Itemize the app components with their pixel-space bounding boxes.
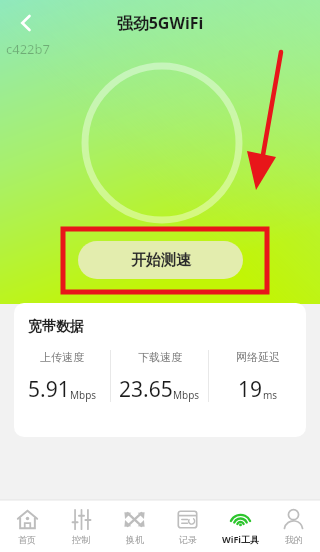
button[interactable]: 换机 (108, 500, 161, 552)
button[interactable]: 开始测速 (78, 241, 243, 279)
button[interactable]: Back (0, 0, 52, 46)
staticText: 宽带数据 (28, 318, 84, 336)
staticText: 我的 (285, 534, 303, 545)
staticText: 5.91 (28, 375, 70, 404)
button[interactable]: 首页 (0, 500, 54, 552)
button[interactable]: 记录 (161, 500, 214, 552)
staticText: 首页 (18, 534, 36, 545)
staticText: ms (263, 388, 278, 402)
staticText: Mbps (173, 388, 200, 402)
staticText: c422b7 (6, 40, 50, 58)
staticText: 控制 (72, 534, 90, 545)
button[interactable]: 我的 (267, 500, 320, 552)
staticText: 19 (238, 375, 263, 404)
staticText: 网络延迟 (236, 350, 280, 364)
staticText: 上传速度 (40, 350, 84, 364)
staticText: 强劲5GWiFi (52, 12, 268, 34)
staticText: 记录 (179, 534, 197, 545)
button[interactable]: 控制 (54, 500, 108, 552)
button[interactable]: WiFi工具 (214, 500, 267, 552)
staticText: 下载速度 (138, 350, 182, 364)
staticText: 开始测速 (131, 251, 191, 270)
staticText: 换机 (126, 534, 144, 545)
staticText: WiFi工具 (222, 533, 260, 545)
staticText: Mbps (70, 388, 97, 402)
staticText: 23.65 (119, 375, 173, 404)
